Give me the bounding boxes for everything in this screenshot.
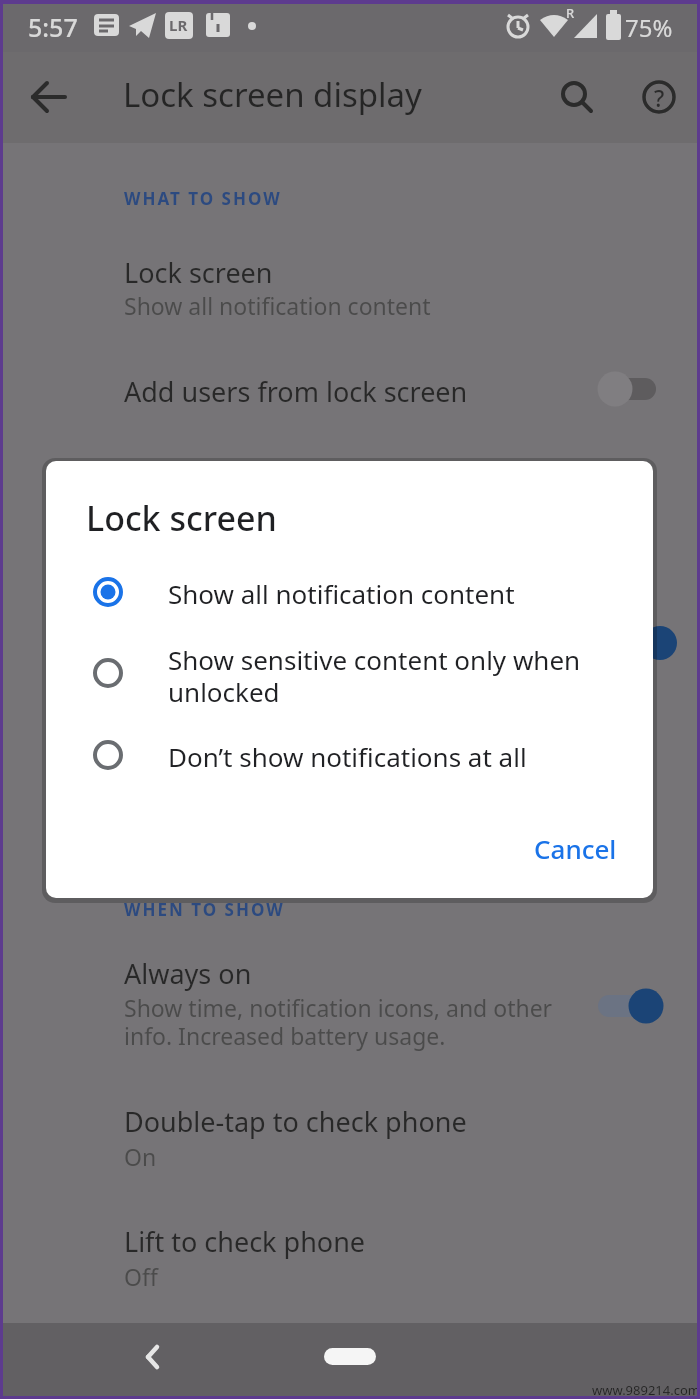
button[interactable]: Don’t show notifications at all bbox=[46, 724, 653, 786]
staticText: Off bbox=[124, 1261, 158, 1292]
button[interactable]: Lock screen bbox=[0, 238, 700, 338]
button[interactable]: Show all notification content bbox=[46, 561, 653, 623]
button[interactable]: Always on bbox=[0, 945, 700, 1055]
staticText: Lock screen bbox=[86, 495, 277, 541]
button[interactable] bbox=[324, 1348, 376, 1365]
staticText: ? bbox=[654, 82, 665, 113]
staticText: R bbox=[566, 4, 575, 22]
button[interactable] bbox=[550, 70, 604, 124]
staticText: 75% bbox=[625, 11, 673, 44]
staticText: Lock screen bbox=[124, 254, 273, 291]
button[interactable]: Double-tap to check phone bbox=[0, 1095, 700, 1190]
staticText: Always on bbox=[124, 955, 252, 992]
staticText: Show time, notification icons, and other bbox=[124, 992, 553, 1023]
staticText: unlocked bbox=[168, 674, 280, 709]
button[interactable] bbox=[125, 1329, 180, 1384]
staticText: Show sensitive content only when bbox=[168, 642, 581, 677]
button[interactable]: Cancel bbox=[528, 827, 623, 870]
staticText: Lock screen display bbox=[123, 72, 422, 117]
button[interactable]: Show sensitive content only when bbox=[46, 636, 653, 714]
staticText: Double-tap to check phone bbox=[124, 1103, 467, 1140]
button[interactable]: ? bbox=[632, 70, 686, 124]
button[interactable]: Lift to check phone bbox=[0, 1215, 700, 1310]
staticText: On bbox=[124, 1141, 157, 1172]
staticText: 5:57 bbox=[28, 10, 78, 44]
button[interactable]: Add users from lock screen bbox=[0, 355, 700, 425]
button[interactable] bbox=[22, 70, 76, 124]
staticText: Lift to check phone bbox=[124, 1223, 366, 1260]
staticText: Show all notification content bbox=[168, 576, 515, 611]
staticText: Show all notification content bbox=[124, 290, 431, 321]
staticText: LR bbox=[169, 15, 188, 35]
staticText: WHEN TO SHOW bbox=[124, 898, 285, 921]
staticText: WHAT TO SHOW bbox=[124, 187, 282, 210]
staticText: Add users from lock screen bbox=[124, 373, 468, 410]
staticText: Cancel bbox=[534, 831, 617, 866]
staticText: www.989214.com bbox=[592, 1381, 700, 1399]
staticText: Don’t show notifications at all bbox=[168, 739, 527, 774]
staticText: info. Increased battery usage. bbox=[124, 1020, 446, 1051]
